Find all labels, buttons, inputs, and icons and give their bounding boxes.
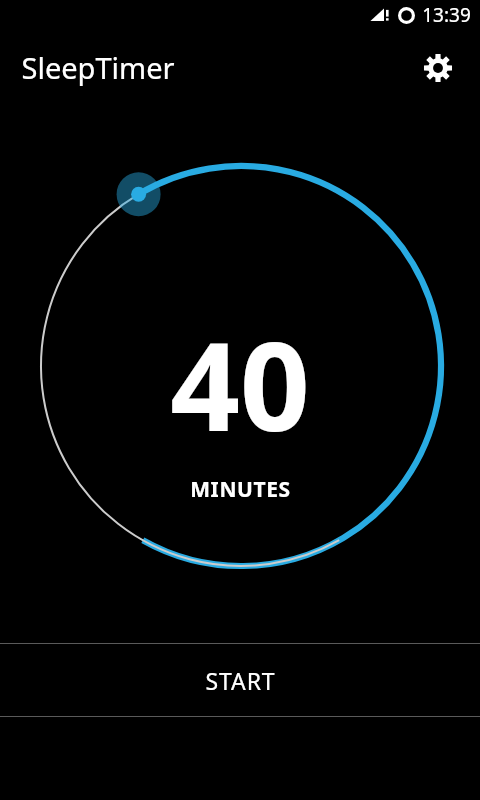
- staticText: 13:39: [422, 2, 471, 28]
- button[interactable]: Settings: [418, 48, 458, 88]
- button[interactable]: START: [0, 644, 480, 716]
- staticText: SleepTimer: [21, 48, 175, 87]
- staticText: 40: [170, 301, 310, 467]
- staticText: START: [205, 665, 276, 696]
- staticText: MINUTES: [190, 475, 291, 504]
